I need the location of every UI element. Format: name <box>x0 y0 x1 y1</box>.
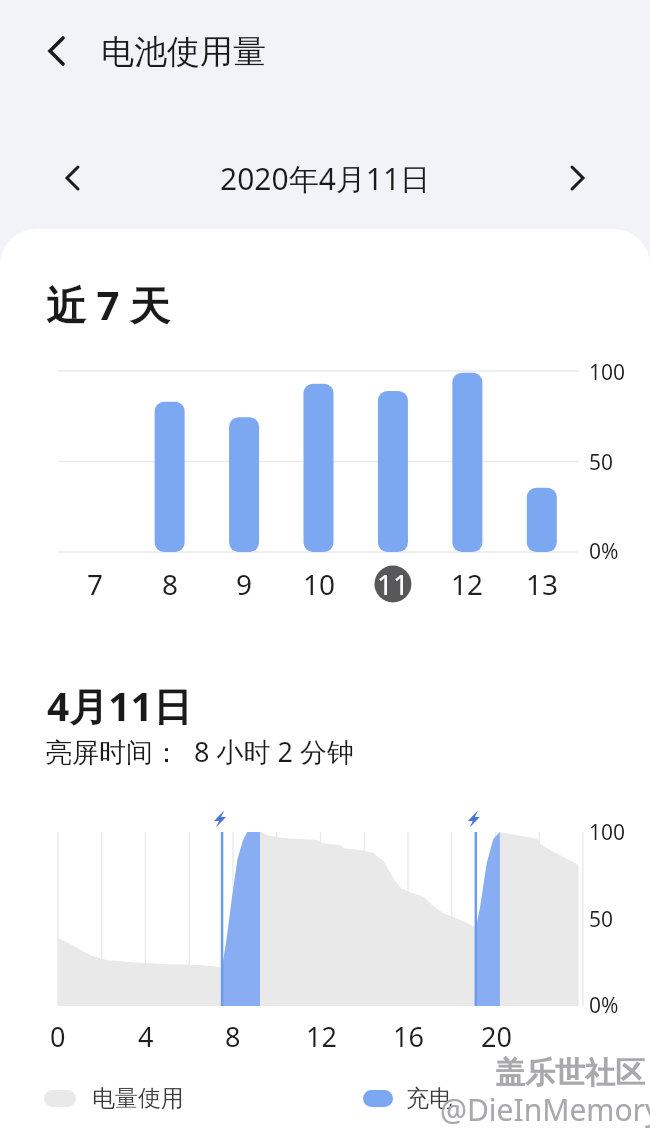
staticText: 电量使用 <box>92 1084 184 1113</box>
button[interactable]: 2020年4月11日 <box>0 154 650 202</box>
button[interactable]: 8 <box>140 560 200 608</box>
staticText: 4月11日 <box>47 679 192 732</box>
staticText: 100 <box>589 818 626 847</box>
staticText: 11 <box>377 565 410 603</box>
staticText: 7 <box>87 565 104 603</box>
staticText: 20 <box>481 1018 512 1055</box>
staticText: 50 <box>589 448 614 477</box>
staticText: 12 <box>451 565 484 603</box>
staticText: 0% <box>589 991 619 1020</box>
button[interactable] <box>36 27 80 75</box>
staticText: 盖乐世社区 <box>495 1054 645 1092</box>
staticText: @DieInMemory <box>442 1090 650 1131</box>
staticText: 13 <box>526 565 559 603</box>
button[interactable] <box>52 154 96 202</box>
button[interactable]: 11 <box>363 560 423 608</box>
staticText: 2020年4月11日 <box>220 158 431 199</box>
staticText: 近 7 天 <box>46 277 170 332</box>
staticText: 8 <box>162 565 179 603</box>
staticText: 10 <box>303 565 336 603</box>
button[interactable]: 7 <box>65 560 125 608</box>
staticText: 8 <box>225 1018 241 1055</box>
button[interactable]: 9 <box>214 560 274 608</box>
staticText: 盖乐世社区 <box>497 1055 647 1093</box>
staticText: 0 <box>50 1018 66 1055</box>
staticText: 亮屏时间： 8 小时 2 分钟 <box>45 733 354 770</box>
staticText: @DieInMemory <box>440 1089 650 1130</box>
staticText: 9 <box>236 565 253 603</box>
button[interactable]: 13 <box>512 560 572 608</box>
staticText: 充电 <box>406 1084 452 1113</box>
button[interactable]: 12 <box>437 560 497 608</box>
staticText: 4 <box>138 1018 154 1055</box>
staticText: 电池使用量 <box>101 31 266 73</box>
button[interactable] <box>554 154 598 202</box>
staticText: 12 <box>306 1018 337 1055</box>
button[interactable]: 10 <box>289 560 349 608</box>
staticText: 16 <box>393 1018 424 1055</box>
staticText: 0% <box>589 537 619 566</box>
staticText: 100 <box>589 358 626 387</box>
staticText: 50 <box>589 905 614 934</box>
